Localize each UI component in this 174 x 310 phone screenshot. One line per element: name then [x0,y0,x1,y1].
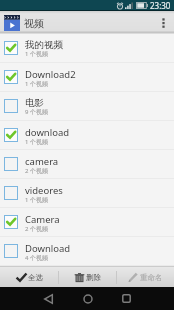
staticText: 2 个视频 [25,167,48,175]
staticText: 23:30 [150,0,171,11]
button[interactable]: Recent apps [111,287,142,310]
staticText: download [25,126,70,139]
staticText: 9 个视频 [25,108,48,116]
staticText: 我的视频 [25,39,63,51]
button[interactable]: Download [0,237,174,266]
staticText: Camera [25,213,60,226]
button[interactable]: Download2 [0,63,174,92]
staticText: 重命名 [140,273,163,282]
staticText: 2 个视频 [25,225,48,233]
button[interactable]: More options [152,11,174,34]
staticText: 视频 [24,17,44,30]
button[interactable]: 重命名 [117,267,174,287]
button[interactable]: 全选 [0,267,58,287]
button[interactable]: videores [0,179,174,208]
button[interactable]: download [0,121,174,150]
staticText: Download [25,242,71,255]
staticText: 1 个视频 [25,50,48,58]
staticText: 4 个视频 [25,254,48,262]
button[interactable]: Back [33,287,64,310]
staticText: videores [25,184,63,197]
staticText: camera [25,155,59,168]
button[interactable]: 我的视频 [0,34,174,63]
button[interactable]: 电影 [0,92,174,121]
button[interactable]: 删除 [59,267,116,287]
button[interactable]: camera [0,150,174,179]
staticText: 1 个视频 [25,196,48,204]
button[interactable]: Camera [0,208,174,237]
staticText: 电影 [25,97,44,109]
staticText: 1 个视频 [25,138,48,146]
staticText: 全选 [28,273,43,282]
staticText: 删除 [86,273,101,282]
staticText: 1 个视频 [25,80,48,88]
staticText: Download2 [25,68,76,81]
button[interactable]: Home [72,287,103,310]
